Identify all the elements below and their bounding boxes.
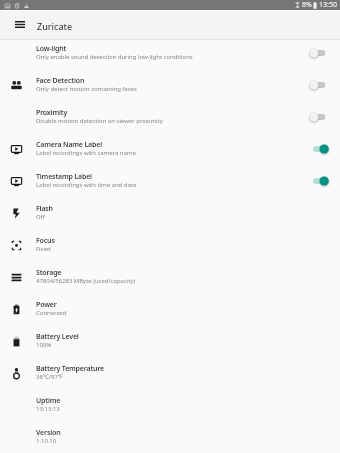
button[interactable]: Camera Name Label: [0, 136, 340, 162]
staticText: Battery Temperature: [36, 364, 105, 374]
staticText: 13:13:13: [36, 405, 60, 413]
staticText: 36℃/97℉: [36, 373, 64, 381]
staticText: Zuricate: [37, 20, 73, 32]
button[interactable]: Power: [0, 296, 340, 322]
staticText: 1.10.10: [36, 437, 57, 445]
button[interactable]: Disabled toggle: [312, 77, 334, 93]
staticText: Face Detection: [36, 76, 85, 86]
staticText: Camera Name Label: [36, 140, 102, 150]
button[interactable]: Flash: [0, 200, 340, 226]
staticText: Off: [36, 213, 45, 221]
button[interactable]: Low-light: [0, 40, 340, 66]
button[interactable]: Version: [0, 424, 340, 450]
staticText: Battery Level: [36, 332, 79, 342]
button[interactable]: Timestamp Label: [0, 168, 340, 194]
button[interactable]: Focus: [0, 232, 340, 258]
staticText: Fixed: [36, 245, 51, 253]
button[interactable]: Open navigation menu: [11, 16, 28, 33]
staticText: Low-light: [36, 44, 67, 54]
staticText: Flash: [36, 204, 53, 214]
staticText: 47804/56283 MByte (used/capacity): [36, 277, 136, 285]
staticText: 100%: [36, 341, 52, 349]
staticText: Timestamp Label: [36, 172, 92, 182]
staticText: Storage: [36, 268, 62, 278]
staticText: Disable motion detection on viewer proxi…: [36, 117, 163, 125]
button[interactable]: Face Detection: [0, 72, 340, 98]
staticText: 13:50: [319, 0, 337, 10]
button[interactable]: Proximity: [0, 104, 340, 130]
staticText: Connected: [36, 309, 67, 317]
staticText: Only detect motion containing faces: [36, 85, 137, 93]
button[interactable]: Disabled toggle: [312, 45, 334, 61]
button[interactable]: Enabled toggle: [312, 141, 334, 157]
button[interactable]: Battery Level: [0, 328, 340, 354]
staticText: Version: [36, 428, 61, 438]
staticText: Uptime: [36, 396, 61, 406]
button[interactable]: Disabled toggle: [312, 109, 334, 125]
staticText: Focus: [36, 236, 55, 246]
button[interactable]: Enabled toggle: [312, 173, 334, 189]
staticText: Power: [36, 300, 57, 310]
staticText: 8%: [302, 0, 312, 10]
button[interactable]: Battery Temperature: [0, 360, 340, 386]
staticText: Label recordings with camera name: [36, 149, 136, 157]
button[interactable]: Uptime: [0, 392, 340, 418]
staticText: Proximity: [36, 108, 68, 118]
staticText: Only enable sound detection during low-l…: [36, 53, 193, 61]
button[interactable]: Storage: [0, 264, 340, 290]
staticText: Label recordings with time and date: [36, 181, 137, 189]
